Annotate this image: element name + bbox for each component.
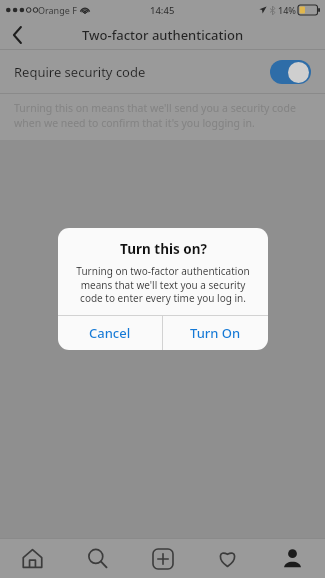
button[interactable]: Search [65,539,130,578]
button[interactable]: Require security code [0,50,325,93]
staticText: Turn On [190,324,241,342]
staticText: Two-factor authentication [82,26,244,44]
staticText: 14% [278,4,296,16]
button[interactable]: Require security code toggle [270,60,311,84]
button[interactable]: Home [0,539,65,578]
staticText: Require security code [14,63,146,81]
button[interactable]: Back [0,20,34,49]
button[interactable]: Turn On [163,316,268,350]
staticText: Turning on two-factor authentication mea… [70,264,256,305]
staticText: 14:45 [150,4,175,17]
staticText: Turning this on means that we'll send yo… [14,101,296,130]
button[interactable]: Profile [260,539,325,578]
staticText: Turn this on? [120,240,207,258]
staticText: Orange F [38,4,77,16]
staticText: Cancel [89,324,131,342]
button[interactable]: Activity [195,539,260,578]
button[interactable]: Add post [130,539,195,578]
button[interactable]: Cancel [58,316,162,350]
